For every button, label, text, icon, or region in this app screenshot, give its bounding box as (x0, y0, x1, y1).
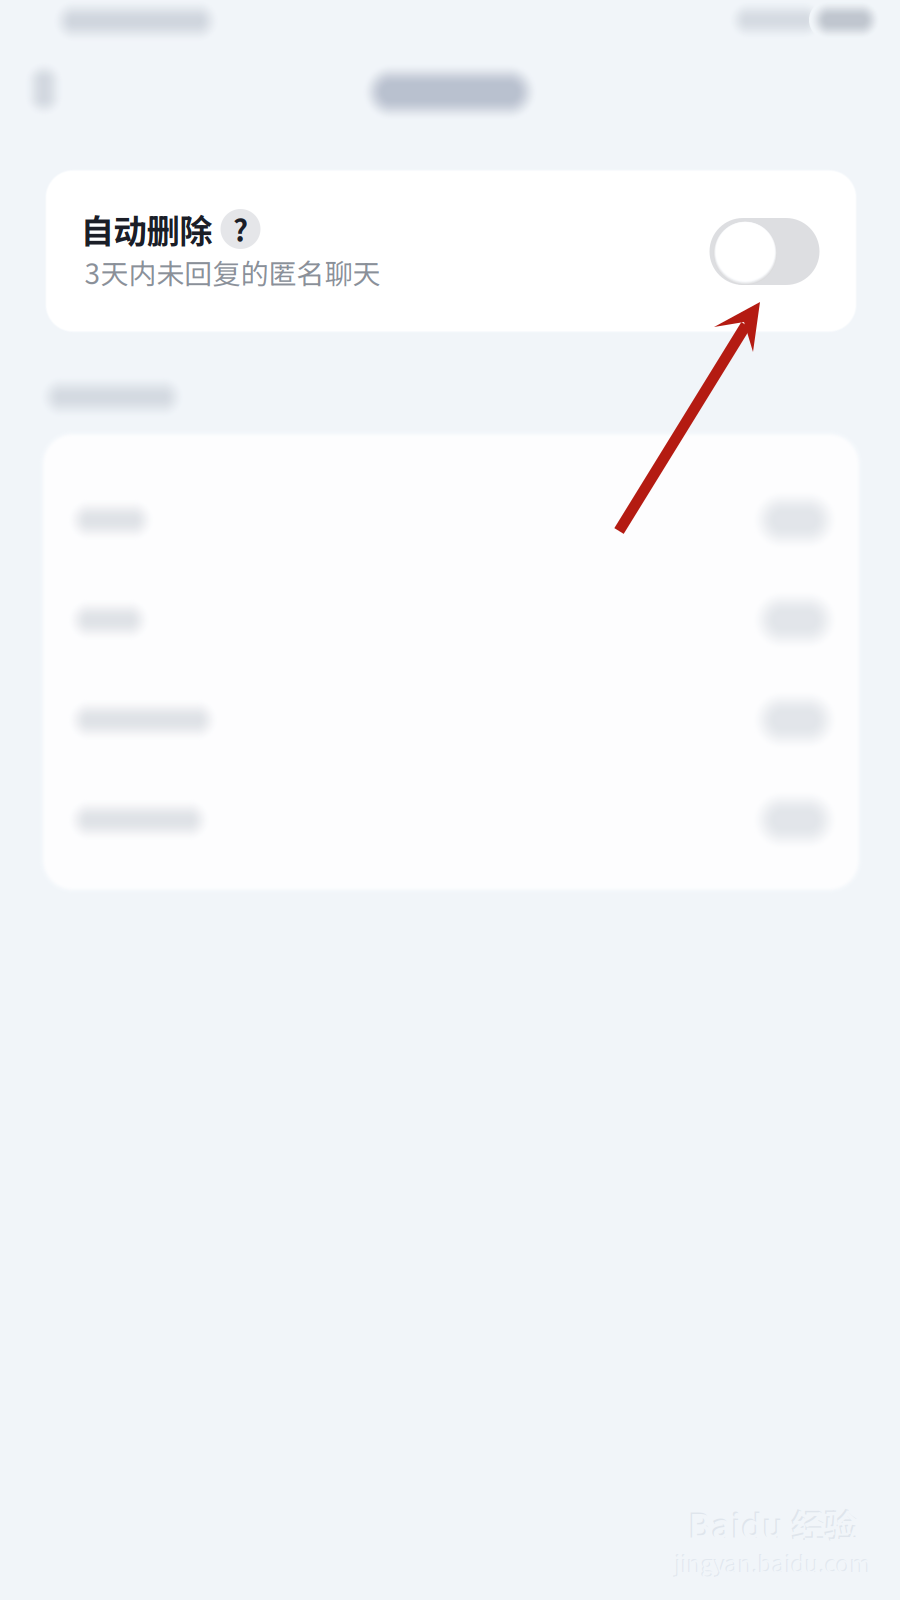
staticText: Baidu 经验 (687, 1499, 856, 1547)
button[interactable]: Help (220, 209, 260, 249)
staticText: jingyan.baidu.com (674, 1546, 870, 1578)
staticText: 自动删除 (80, 205, 212, 253)
button[interactable]: 自动删除 (709, 218, 819, 285)
staticText: ? (233, 208, 248, 250)
staticText: jingyan.baidu.com (675, 1547, 871, 1580)
staticText: Baidu 经验 (689, 1500, 858, 1549)
staticText: 3天内未回复的匿名聊天 (84, 252, 380, 292)
button[interactable]: Back (6, 51, 82, 127)
